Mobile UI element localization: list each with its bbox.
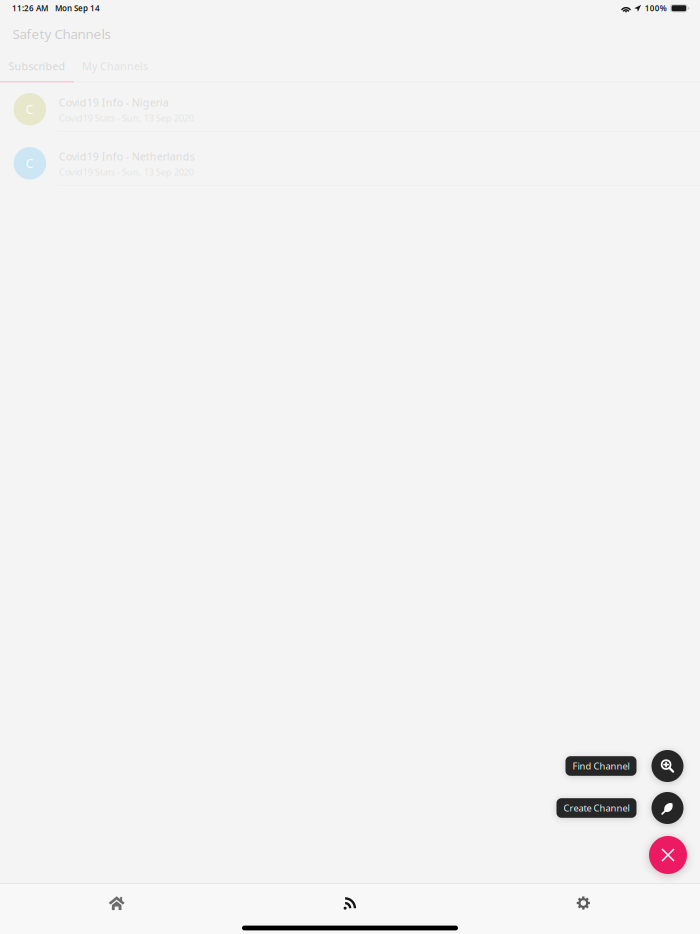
staticText: Covid19 Info - Netherlands	[59, 149, 195, 164]
button[interactable]: Subscribed	[0, 51, 74, 81]
button[interactable]: Create Channel	[556, 798, 636, 818]
staticText: Subscribed	[8, 59, 65, 73]
staticText: Covid19 Info - Nigeria	[59, 95, 169, 110]
button[interactable]: Create Channel	[651, 792, 683, 824]
staticText: Create Channel	[563, 802, 629, 814]
button[interactable]: My Channels	[74, 51, 156, 81]
button[interactable]: Find Channel	[651, 750, 683, 782]
staticText: Covid19 Stats - Sun, 13 Sep 2020	[59, 112, 194, 124]
staticText: C	[26, 101, 34, 117]
staticText: Mon Sep 14	[55, 3, 100, 13]
staticText: C	[26, 155, 34, 171]
button[interactable]: Settings	[467, 884, 700, 922]
staticText: Covid19 Stats - Sun, 13 Sep 2020	[59, 166, 194, 178]
staticText: 11:26 AM	[12, 3, 48, 13]
button[interactable]: Channels	[233, 884, 467, 922]
button[interactable]: C	[0, 139, 700, 193]
staticText: Safety Channels	[13, 25, 111, 43]
staticText: My Channels	[82, 59, 148, 73]
button[interactable]: Find Channel	[565, 756, 636, 776]
button[interactable]: Home	[0, 884, 233, 922]
staticText: 100%	[645, 3, 667, 13]
button[interactable]: C	[0, 85, 700, 139]
button[interactable]: Close menu	[649, 836, 687, 874]
staticText: Find Channel	[572, 760, 629, 772]
